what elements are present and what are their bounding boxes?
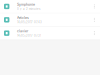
button[interactable]: Articles — [0, 13, 100, 27]
staticText: Symphonie — [17, 2, 35, 6]
button[interactable]: More options — [91, 14, 97, 25]
staticText: Articles — [17, 16, 29, 20]
button[interactable]: clavier — [0, 27, 100, 40]
button[interactable]: More options — [91, 1, 97, 12]
button[interactable]: Symphonie — [0, 0, 100, 13]
staticText: 14/05/2017 07:31 — [17, 34, 41, 37]
button[interactable]: More options — [91, 28, 97, 39]
staticText: clavier — [17, 29, 28, 33]
staticText: 14/05/2017 07:43 — [17, 21, 42, 24]
staticText: Il y a 2 minutes — [17, 7, 40, 11]
